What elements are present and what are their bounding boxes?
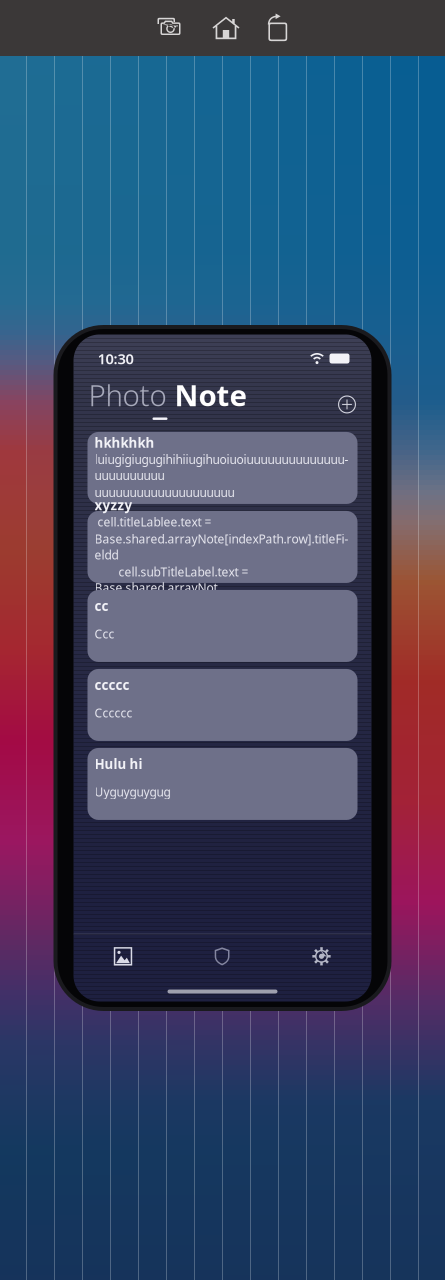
button[interactable]: Screenshot xyxy=(156,16,186,40)
button[interactable]: ccccc xyxy=(87,669,357,741)
staticText: 10:30 xyxy=(97,349,133,368)
staticText: xyzzy xyxy=(94,496,132,514)
staticText: Cccccc xyxy=(94,705,132,721)
button[interactable]: Add note xyxy=(337,395,356,420)
button[interactable]: Settings xyxy=(271,934,371,978)
staticText: Uyguyguygug xyxy=(94,784,170,800)
staticText: Base.shared.arrayNote[indexPath.row].tit… xyxy=(94,531,348,563)
staticText: cell.titleLablee.text = xyxy=(94,514,211,530)
staticText: Ccc xyxy=(94,626,114,642)
button[interactable]: Rotate xyxy=(266,13,289,42)
staticText: hkhkhkh xyxy=(94,434,154,451)
button[interactable]: Photos xyxy=(73,934,172,978)
button[interactable]: xyzzy xyxy=(87,511,357,583)
staticText: luiugigiugugihihiiugihuoiuoiuuuuuuuuuuuu… xyxy=(94,451,348,483)
staticText: uuuuuuuuuuuuuuuuuuuu xyxy=(94,484,234,500)
button[interactable]: cc xyxy=(87,590,357,662)
staticText: Note xyxy=(174,375,247,414)
staticText: cc xyxy=(94,597,108,615)
staticText: ccccc xyxy=(94,676,129,694)
button[interactable]: hkhkhkh xyxy=(87,432,357,504)
staticText: Photo xyxy=(88,375,174,414)
staticText: Hulu hi xyxy=(94,755,142,773)
button[interactable]: Hulu hi xyxy=(87,748,357,820)
staticText: cell.subTitleLabel.text = Base.shared.ar… xyxy=(94,564,248,596)
button[interactable]: Privacy xyxy=(172,934,271,978)
button[interactable]: Home xyxy=(212,16,240,40)
